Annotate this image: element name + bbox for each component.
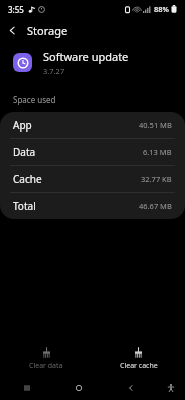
staticText: App bbox=[13, 118, 32, 132]
button[interactable]: Cache bbox=[0, 166, 185, 192]
button[interactable]: Software update bbox=[0, 42, 185, 82]
staticText: 6.13 MB bbox=[143, 147, 172, 157]
button[interactable]: Clear data bbox=[0, 344, 92, 374]
staticText: Cache bbox=[13, 172, 42, 186]
button[interactable]: Data bbox=[0, 139, 185, 165]
staticText: 88% bbox=[154, 4, 169, 14]
button[interactable]: Total bbox=[0, 193, 185, 219]
staticText: 32.77 KB bbox=[141, 174, 172, 184]
staticText: 3.7.27 bbox=[43, 66, 65, 76]
staticText: Space used bbox=[13, 94, 56, 105]
staticText: 3:55 bbox=[8, 4, 24, 15]
staticText: Storage bbox=[27, 23, 68, 38]
staticText: Software update bbox=[43, 49, 129, 64]
staticText: Clear data bbox=[29, 361, 63, 371]
button[interactable]: Home bbox=[53, 383, 105, 393]
staticText: 40.51 MB bbox=[139, 120, 172, 130]
staticText: Clear cache bbox=[120, 361, 158, 371]
button[interactable]: App bbox=[0, 112, 185, 138]
button[interactable]: Back bbox=[105, 383, 157, 393]
staticText: Total bbox=[13, 199, 36, 213]
staticText: 46.67 MB bbox=[139, 201, 172, 211]
button[interactable]: Clear cache bbox=[92, 344, 185, 374]
button[interactable]: Back bbox=[0, 18, 24, 42]
button[interactable]: Accessibility bbox=[157, 383, 185, 393]
button[interactable]: Recents bbox=[0, 383, 53, 393]
staticText: Data bbox=[13, 145, 36, 159]
